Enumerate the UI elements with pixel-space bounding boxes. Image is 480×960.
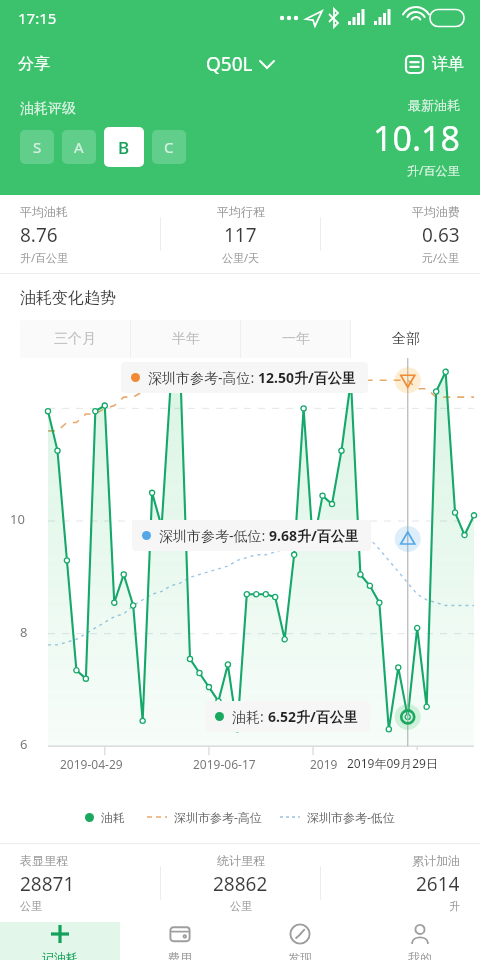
staticText: 2019-06-17: [193, 756, 256, 772]
staticText: 表显里程: [20, 853, 68, 868]
staticText: 8: [20, 623, 28, 641]
staticText: 深圳市参考-高位: [174, 809, 262, 825]
staticText: 三个月: [54, 330, 96, 348]
staticText: 0.63: [422, 222, 460, 248]
button[interactable]: 我的: [360, 922, 480, 960]
staticText: 最新油耗: [408, 97, 460, 113]
staticText: 深圳市参考-高位:: [148, 368, 258, 387]
staticText: S: [33, 137, 42, 157]
staticText: 升: [449, 899, 460, 913]
staticText: 升/百公里: [407, 162, 460, 178]
other: 详单: [405, 55, 424, 74]
button[interactable]: 分享: [0, 44, 68, 84]
staticText: 9.68升/百公里: [269, 526, 359, 545]
button[interactable]: A: [62, 130, 96, 164]
button[interactable]: C: [152, 130, 186, 164]
staticText: 28862: [213, 871, 268, 897]
button[interactable]: 一年: [241, 320, 350, 358]
button[interactable]: 发现: [240, 922, 360, 960]
button[interactable]: 记油耗: [0, 922, 120, 960]
staticText: 2019-0: [310, 756, 349, 772]
staticText: 油耗:: [232, 707, 268, 726]
staticText: A: [74, 137, 84, 157]
button[interactable]: 全部: [351, 320, 460, 358]
staticText: 一年: [282, 330, 310, 348]
staticText: 公里/天: [222, 250, 260, 265]
staticText: 28871: [20, 871, 75, 897]
staticText: 平均行程: [217, 204, 265, 219]
button[interactable]: 三个月: [20, 320, 130, 358]
staticText: 6.52升/百公里: [268, 707, 358, 726]
staticText: 全部: [392, 330, 420, 348]
button[interactable]: 详单: [395, 46, 480, 82]
staticText: 我的: [408, 950, 432, 960]
button[interactable]: S: [20, 130, 54, 164]
staticText: 分享: [18, 54, 50, 74]
staticText: 12.50升/百公里: [258, 368, 356, 387]
staticText: 2019年09月29日: [347, 755, 438, 771]
staticText: 记油耗: [42, 950, 78, 960]
staticText: 平均油费: [412, 204, 460, 219]
staticText: 发现: [288, 950, 312, 960]
staticText: 油耗变化趋势: [20, 288, 116, 308]
button[interactable]: 深圳市参考-高位:: [121, 362, 368, 393]
staticText: 2019-04-29: [60, 756, 123, 772]
staticText: 6: [20, 735, 28, 753]
staticText: 深圳市参考-低位:: [159, 526, 269, 545]
staticText: 公里: [230, 899, 252, 913]
button[interactable]: 费用: [120, 922, 240, 960]
staticText: 费用: [168, 950, 192, 960]
button[interactable]: 半年: [131, 320, 240, 358]
staticText: 平均油耗: [20, 204, 68, 219]
button[interactable]: 深圳市参考-低位:: [132, 520, 371, 551]
staticText: 油耗评级: [20, 100, 76, 118]
staticText: 深圳市参考-低位: [307, 809, 395, 825]
staticText: 统计里程: [217, 853, 265, 868]
staticText: 油耗: [101, 810, 125, 825]
staticText: 17:15: [18, 8, 57, 28]
button[interactable]: 油耗:: [205, 701, 370, 732]
staticText: C: [164, 137, 174, 157]
staticText: 累计加油: [412, 853, 460, 868]
staticText: 半年: [172, 330, 200, 348]
staticText: 2614: [416, 871, 460, 897]
staticText: 28: [430, 756, 444, 772]
button[interactable]: Q50L: [196, 43, 284, 85]
staticText: 10: [10, 510, 25, 528]
staticText: 元/公里: [422, 250, 460, 265]
staticText: 8.76: [20, 222, 58, 248]
staticText: B: [118, 136, 130, 159]
staticText: 升/百公里: [20, 250, 69, 265]
staticText: 详单: [432, 54, 464, 74]
staticText: Q50L: [206, 51, 253, 77]
button[interactable]: B: [104, 127, 144, 167]
staticText: 10.18: [373, 115, 460, 161]
staticText: 117: [224, 222, 257, 248]
staticText: 公里: [20, 899, 42, 913]
